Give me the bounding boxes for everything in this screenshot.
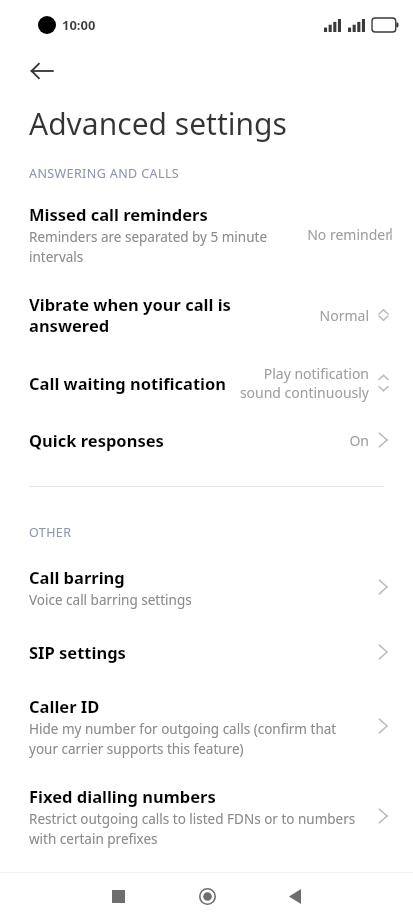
staticText: Voice call barring settings — [29, 591, 192, 609]
staticText: Quick responses — [29, 429, 164, 451]
staticText: Hide my number for outgoing calls (confi… — [29, 720, 359, 758]
button[interactable]: SIP settings — [0, 623, 413, 681]
button[interactable]: Back — [20, 50, 64, 92]
staticText: Advanced settings — [29, 103, 287, 144]
button[interactable]: Vibrate when your call is answered — [0, 276, 413, 354]
staticText: Restrict outgoing calls to listed FDNs o… — [29, 810, 369, 848]
staticText: OTHER — [29, 524, 72, 541]
button[interactable]: Missed call reminders — [0, 192, 413, 276]
button[interactable]: Fixed dialling numbers — [0, 771, 413, 861]
staticText: Play notification sound continuously — [239, 364, 369, 402]
staticText: Vibrate when your call is answered — [29, 293, 244, 337]
staticText: Caller ID — [29, 695, 100, 717]
button[interactable]: Quick responses — [0, 412, 413, 468]
staticText: Normal — [289, 306, 369, 325]
button[interactable]: Back — [273, 874, 317, 918]
staticText: 10:00 — [62, 16, 96, 34]
staticText: Missed call reminders — [29, 203, 208, 225]
button[interactable]: Home — [185, 874, 229, 918]
staticText: SIP settings — [29, 641, 126, 663]
staticText: Fixed dialling numbers — [29, 785, 216, 807]
button[interactable]: Call barring — [0, 551, 413, 623]
staticText: ANSWERING AND CALLS — [29, 165, 180, 182]
staticText: Call barring — [29, 566, 125, 588]
button[interactable]: Recent apps — [96, 874, 140, 918]
staticText: Call waiting notification — [29, 372, 227, 394]
staticText: On — [329, 431, 369, 450]
staticText: No reminder — [279, 225, 391, 244]
staticText: Reminders are separated by 5 minute inte… — [29, 228, 279, 266]
button[interactable]: Call waiting notification — [0, 354, 413, 412]
button[interactable]: Caller ID — [0, 681, 413, 771]
